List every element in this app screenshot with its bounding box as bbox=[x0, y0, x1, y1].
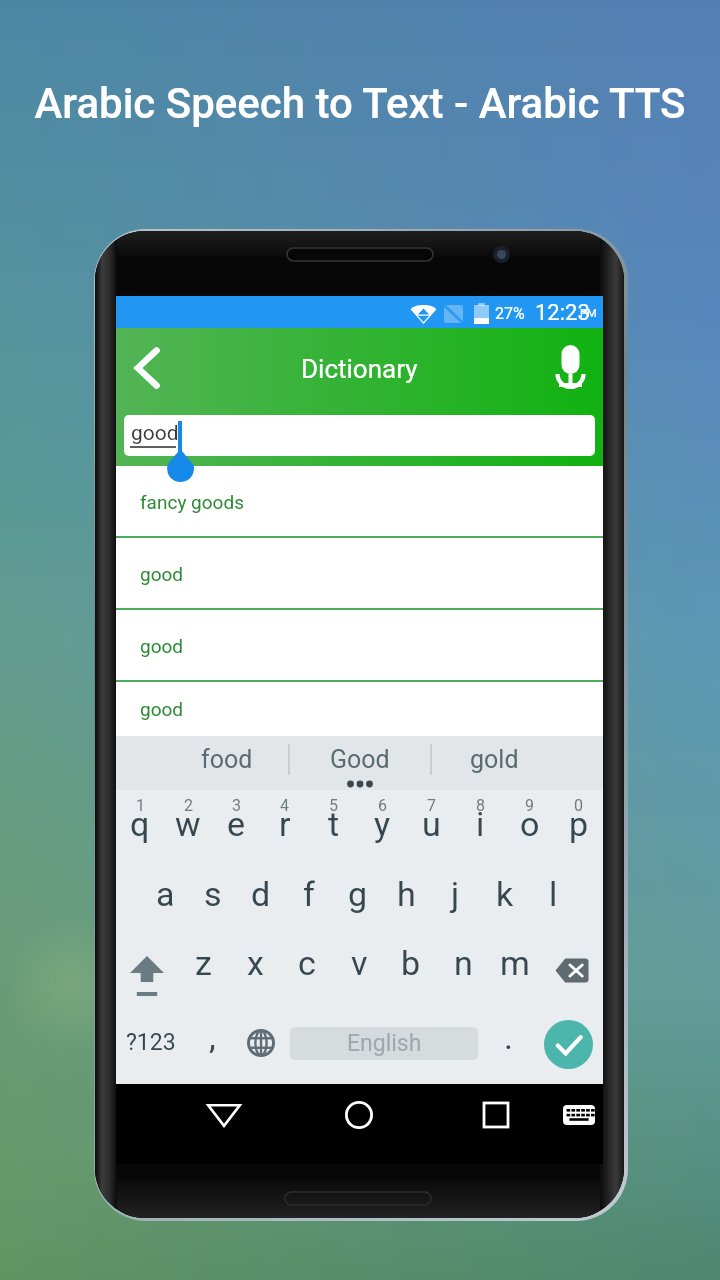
staticText: English bbox=[347, 1030, 422, 1057]
staticText: PM bbox=[580, 307, 597, 320]
button[interactable]: Switch keyboard bbox=[553, 1086, 604, 1144]
button[interactable]: j bbox=[431, 863, 480, 931]
button[interactable]: gold bbox=[431, 736, 603, 783]
staticText: q bbox=[130, 804, 150, 844]
staticText: i bbox=[476, 804, 485, 844]
staticText: good bbox=[140, 698, 184, 720]
button[interactable]: 3 bbox=[212, 790, 260, 863]
staticText: x bbox=[247, 943, 264, 983]
staticText: fancy goods bbox=[140, 491, 244, 513]
staticText: 3 bbox=[232, 796, 241, 815]
staticText: r bbox=[279, 804, 291, 844]
button[interactable]: . bbox=[486, 1011, 530, 1073]
staticText: 12:23 bbox=[535, 300, 590, 326]
button[interactable]: n bbox=[437, 931, 489, 999]
button[interactable]: Good bbox=[289, 736, 431, 783]
button[interactable]: v bbox=[333, 931, 385, 999]
button[interactable]: food bbox=[116, 736, 289, 783]
staticText: z bbox=[195, 943, 212, 983]
button[interactable]: a bbox=[141, 863, 189, 931]
staticText: 5 bbox=[329, 796, 338, 815]
staticText: Good bbox=[330, 745, 390, 774]
staticText: k bbox=[496, 874, 514, 914]
staticText: b bbox=[401, 943, 421, 983]
button[interactable]: 6 bbox=[358, 790, 407, 863]
button[interactable]: English bbox=[290, 1027, 478, 1060]
button[interactable]: good bbox=[116, 610, 603, 682]
staticText: , bbox=[209, 1017, 216, 1057]
button[interactable]: l bbox=[529, 863, 578, 931]
staticText: 4 bbox=[280, 796, 289, 815]
staticText: good bbox=[131, 421, 179, 446]
staticText: t bbox=[328, 804, 340, 844]
staticText: Arabic Speech to Text - Arabic TTS bbox=[34, 79, 686, 128]
staticText: food bbox=[201, 745, 253, 774]
button[interactable]: 5 bbox=[309, 790, 358, 863]
staticText: v bbox=[351, 943, 368, 983]
button[interactable]: z bbox=[178, 931, 229, 999]
button[interactable]: 8 bbox=[456, 790, 505, 863]
button[interactable]: s bbox=[189, 863, 237, 931]
button[interactable]: Back bbox=[123, 344, 171, 392]
button[interactable]: fancy goods bbox=[116, 466, 603, 538]
staticText: l bbox=[549, 874, 558, 914]
staticText: c bbox=[298, 943, 316, 983]
staticText: gold bbox=[470, 745, 519, 774]
button[interactable]: 9 bbox=[505, 790, 554, 863]
button[interactable]: m bbox=[489, 931, 541, 999]
staticText: p bbox=[569, 804, 589, 844]
button[interactable]: 4 bbox=[260, 790, 309, 863]
button[interactable]: g bbox=[333, 863, 382, 931]
button[interactable]: good bbox=[116, 682, 603, 736]
staticText: 2 bbox=[184, 796, 193, 815]
button[interactable]: c bbox=[281, 931, 333, 999]
staticText: good bbox=[140, 563, 184, 585]
button[interactable]: good bbox=[124, 415, 595, 456]
button[interactable]: ?123 bbox=[118, 1011, 184, 1073]
staticText: ?123 bbox=[126, 1029, 176, 1056]
button[interactable]: k bbox=[480, 863, 529, 931]
staticText: j bbox=[451, 874, 460, 914]
button[interactable]: Change language bbox=[237, 1019, 285, 1067]
staticText: o bbox=[520, 804, 540, 844]
staticText: . bbox=[504, 1017, 513, 1057]
button[interactable]: Voice input bbox=[546, 344, 594, 392]
button[interactable]: 2 bbox=[164, 790, 212, 863]
staticText: g bbox=[348, 874, 368, 914]
button[interactable]: f bbox=[285, 863, 333, 931]
staticText: 0 bbox=[574, 796, 583, 815]
button[interactable]: Shift bbox=[116, 931, 178, 999]
button[interactable]: b bbox=[385, 931, 437, 999]
button[interactable]: Back bbox=[186, 1086, 262, 1144]
staticText: h bbox=[397, 874, 416, 914]
button[interactable]: h bbox=[382, 863, 431, 931]
button[interactable]: Home bbox=[337, 1086, 381, 1144]
button[interactable]: , bbox=[188, 1011, 236, 1073]
button[interactable]: 1 bbox=[116, 790, 164, 863]
button[interactable]: 7 bbox=[407, 790, 456, 863]
staticText: w bbox=[175, 804, 201, 844]
staticText: a bbox=[156, 874, 175, 914]
button[interactable]: Backspace bbox=[541, 931, 603, 999]
staticText: good bbox=[140, 635, 184, 657]
staticText: 1 bbox=[136, 796, 145, 815]
button[interactable]: good bbox=[116, 538, 603, 610]
button[interactable]: Recent apps bbox=[474, 1086, 518, 1144]
button[interactable]: d bbox=[237, 863, 285, 931]
staticText: e bbox=[227, 804, 246, 844]
staticText: 8 bbox=[476, 796, 485, 815]
staticText: y bbox=[374, 804, 391, 844]
staticText: Dictionary bbox=[301, 354, 418, 384]
staticText: f bbox=[303, 874, 315, 914]
staticText: 9 bbox=[525, 796, 534, 815]
button[interactable]: 0 bbox=[554, 790, 603, 863]
staticText: 6 bbox=[378, 796, 387, 815]
staticText: n bbox=[454, 943, 473, 983]
staticText: u bbox=[422, 804, 441, 844]
staticText: 27% bbox=[495, 304, 525, 323]
staticText: d bbox=[251, 874, 271, 914]
button[interactable]: x bbox=[229, 931, 281, 999]
staticText: s bbox=[204, 874, 222, 914]
staticText: 7 bbox=[427, 796, 436, 815]
button[interactable]: Enter bbox=[532, 1008, 604, 1080]
